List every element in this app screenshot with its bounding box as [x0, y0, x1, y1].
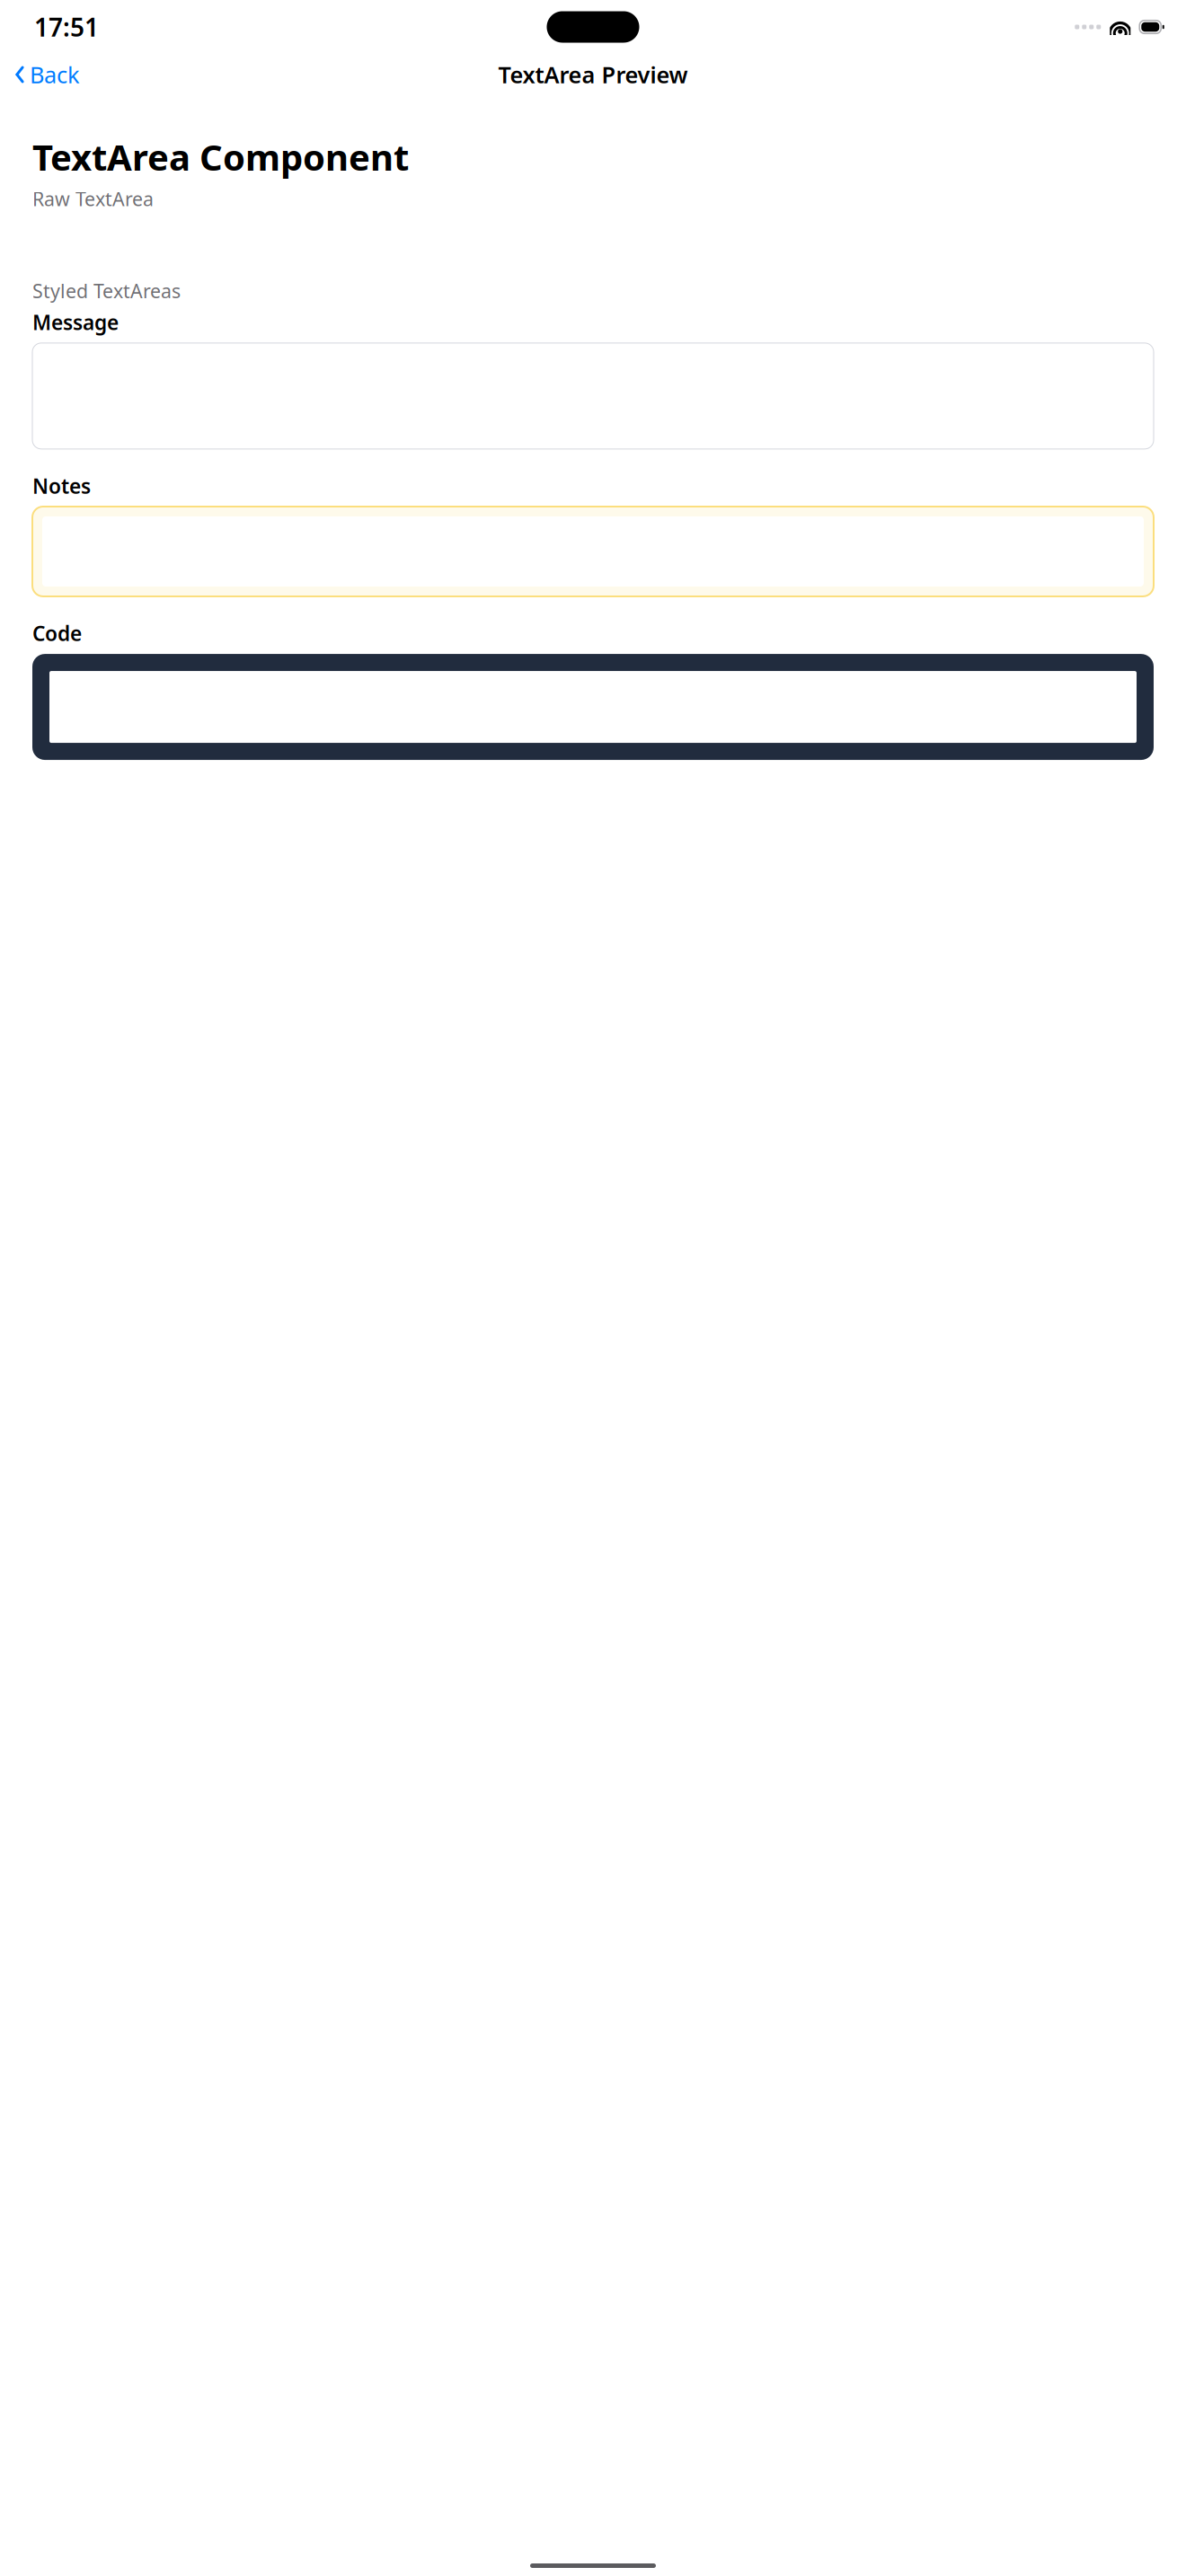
staticText: Code [32, 620, 82, 647]
staticText: 17:51 [34, 10, 99, 44]
staticText: Notes [32, 472, 91, 499]
staticText: Raw TextArea [32, 186, 154, 211]
staticText: TextArea Preview [498, 59, 688, 90]
staticText: Message [32, 309, 119, 336]
staticText: TextArea Component [32, 133, 409, 181]
staticText: Styled TextAreas [32, 278, 181, 303]
button[interactable]: Back [5, 54, 89, 95]
button[interactable]: Message text area [32, 343, 1154, 449]
staticText: Back [30, 59, 80, 90]
button[interactable]: Notes text area [32, 507, 1154, 596]
button[interactable]: Code text area [32, 654, 1154, 760]
